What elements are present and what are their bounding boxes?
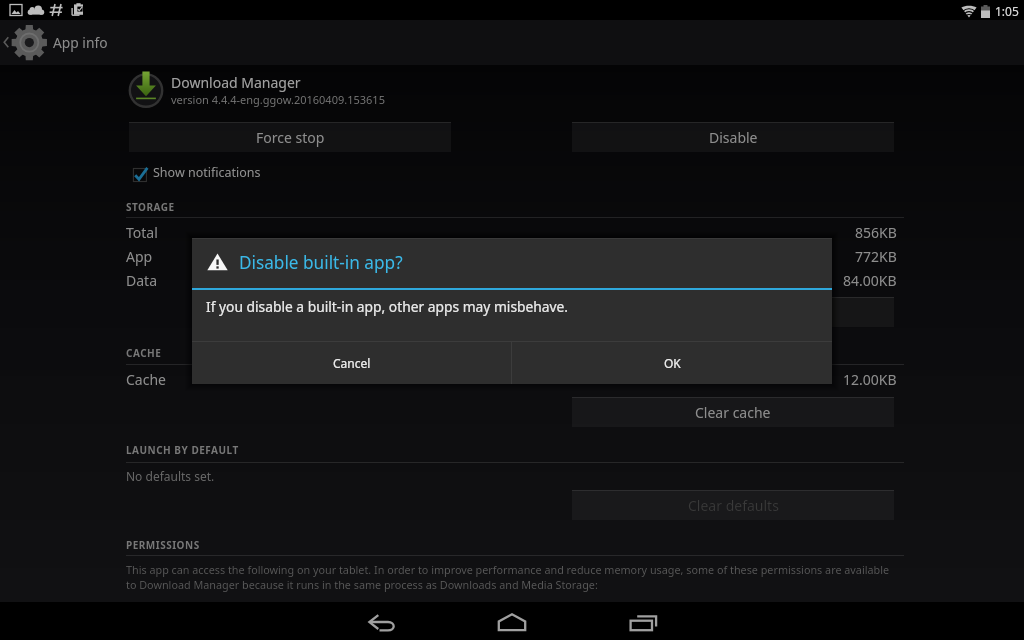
- button[interactable]: OK: [512, 342, 832, 384]
- staticText: 856KB: [855, 223, 897, 242]
- staticText: Total: [126, 223, 158, 242]
- staticText: version 4.4.4-eng.ggow.20160409.153615: [171, 92, 385, 107]
- staticText: Disable: [709, 128, 758, 147]
- staticText: Cache: [126, 370, 166, 389]
- staticText: STORAGE: [126, 200, 175, 214]
- staticText: 1:05: [995, 3, 1019, 19]
- staticText: Data: [126, 271, 157, 290]
- staticText: If you disable a built-in app, other app…: [206, 297, 569, 316]
- button[interactable]: Clear data: [572, 297, 894, 327]
- button[interactable]: Recent apps: [612, 602, 672, 640]
- button[interactable]: Home: [482, 602, 542, 640]
- staticText: This app can access the following on you…: [126, 562, 890, 577]
- button[interactable]: Force stop: [129, 122, 451, 152]
- staticText: Clear defaults: [688, 496, 779, 515]
- staticText: Cancel: [333, 355, 371, 371]
- staticText: Show notifications: [153, 164, 261, 181]
- button[interactable]: Disable: [572, 122, 894, 152]
- button[interactable]: Clear defaults: [572, 490, 894, 520]
- staticText: 84.00KB: [843, 271, 897, 290]
- staticText: App: [126, 247, 153, 266]
- staticText: 772KB: [855, 247, 897, 266]
- staticText: to Download Manager because it runs in t…: [126, 577, 598, 592]
- staticText: PERMISSIONS: [126, 538, 200, 552]
- button[interactable]: Clear cache: [572, 397, 894, 427]
- staticText: LAUNCH BY DEFAULT: [126, 443, 239, 457]
- button[interactable]: Navigate up: [0, 20, 1024, 65]
- staticText: 12.00KB: [843, 370, 897, 389]
- staticText: OK: [664, 355, 681, 371]
- button[interactable]: Cancel: [192, 342, 511, 384]
- button[interactable]: Back: [352, 602, 412, 640]
- button[interactable]: Show notifications: [131, 162, 261, 182]
- staticText: Force stop: [256, 128, 325, 147]
- staticText: No defaults set.: [126, 468, 215, 484]
- staticText: Download Manager: [171, 73, 301, 92]
- staticText: CACHE: [126, 346, 162, 360]
- staticText: Disable built-in app?: [239, 251, 403, 274]
- staticText: App info: [53, 33, 108, 52]
- staticText: Clear cache: [695, 403, 771, 422]
